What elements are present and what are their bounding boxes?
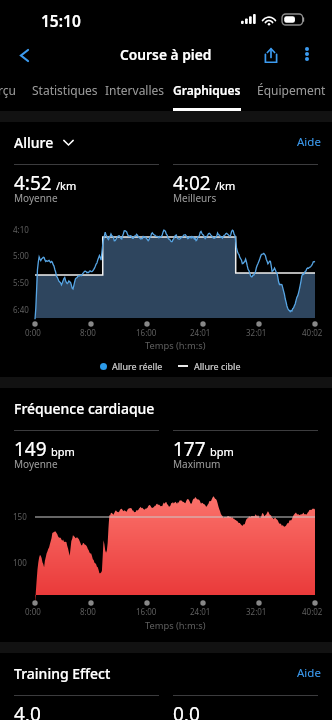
staticText: 40:02: [302, 327, 323, 338]
staticText: 4:52: [14, 170, 52, 196]
staticText: Temps (h:m:s): [145, 619, 206, 632]
staticText: Allure cible: [194, 360, 241, 372]
staticText: /km: [215, 178, 236, 193]
staticText: 40:02: [302, 606, 323, 617]
staticText: 24:01: [190, 327, 211, 338]
button[interactable]: Statistiques: [30, 74, 100, 111]
staticText: Moyenne: [14, 191, 58, 205]
staticText: Fréquence cardiaque: [14, 399, 155, 418]
staticText: Graphiques: [173, 82, 241, 98]
staticText: bpm: [210, 444, 234, 459]
staticText: 4:10: [13, 224, 29, 235]
staticText: Statistiques: [32, 82, 98, 98]
staticText: rçu: [0, 82, 16, 98]
staticText: 8:00: [80, 606, 96, 617]
staticText: /km: [56, 178, 77, 193]
staticText: 16:00: [136, 606, 157, 617]
staticText: bpm: [51, 444, 75, 459]
staticText: 4:02: [173, 170, 211, 196]
staticText: Maximum: [173, 457, 221, 471]
button[interactable]: rçu: [0, 74, 18, 111]
button[interactable]: Graphiques: [173, 74, 241, 111]
staticText: 16:00: [136, 327, 157, 338]
staticText: Temps (h:m:s): [145, 339, 206, 352]
button[interactable]: Training Effect: [14, 664, 111, 683]
staticText: 150: [13, 511, 27, 522]
staticText: 5:50: [13, 277, 29, 288]
staticText: Moyenne: [14, 457, 58, 471]
button[interactable]: Aide: [297, 134, 321, 150]
button[interactable]: Fréquence cardiaque: [14, 399, 155, 418]
staticText: 0:00: [25, 606, 41, 617]
staticText: 8:00: [80, 327, 96, 338]
staticText: 0:00: [25, 327, 41, 338]
staticText: Allure réelle: [112, 360, 163, 372]
staticText: 149: [14, 436, 47, 462]
staticText: Équipement: [257, 82, 326, 98]
staticText: Allure: [14, 133, 54, 152]
staticText: 100: [13, 557, 27, 568]
button[interactable]: Aide: [297, 665, 321, 681]
staticText: Intervalles: [105, 82, 165, 98]
staticText: 32:01: [246, 606, 267, 617]
button[interactable]: Intervalles: [102, 74, 168, 111]
staticText: 6:40: [13, 304, 29, 315]
button[interactable]: Équipement: [250, 74, 332, 111]
staticText: 5:00: [13, 250, 29, 261]
button[interactable]: Back: [3, 36, 45, 74]
staticText: Training Effect: [14, 664, 111, 683]
button[interactable]: Allure: [14, 133, 74, 152]
staticText: 32:01: [246, 327, 267, 338]
staticText: 177: [173, 436, 206, 462]
staticText: 0,0: [173, 701, 200, 720]
staticText: 15:10: [41, 10, 81, 31]
staticText: 4,0: [14, 701, 41, 720]
button[interactable]: Share: [252, 36, 290, 74]
staticText: Meilleurs: [173, 191, 217, 205]
staticText: 24:01: [190, 606, 211, 617]
staticText: Course à pied: [120, 45, 212, 64]
button[interactable]: More options: [292, 39, 322, 69]
